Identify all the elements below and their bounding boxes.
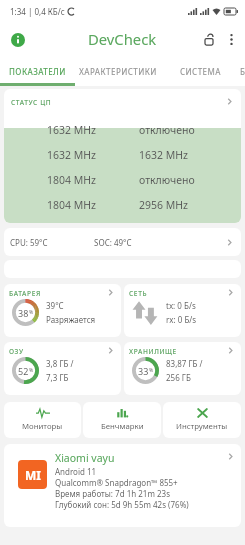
staticText: DevCheck <box>88 29 157 49</box>
button[interactable]: Мониторы <box>4 402 81 438</box>
staticText: 1632 MHz <box>47 123 96 137</box>
staticText: СТАТУС ЦП <box>11 98 52 107</box>
staticText: 2956 MHz <box>139 198 188 212</box>
staticText: SOC: 49°C <box>94 237 132 248</box>
staticText: CPU: 59°C <box>10 237 48 248</box>
staticText: 1:34 | 0,4 КБ/с <box>10 6 65 17</box>
button[interactable]: Info <box>6 28 29 51</box>
staticText: отключено <box>139 123 195 137</box>
button[interactable]: ПОКАЗАТЕЛИ <box>0 56 75 86</box>
button[interactable]: Инструменты <box>163 402 241 438</box>
staticText: отключено <box>139 173 195 187</box>
staticText: Android 11 <box>55 466 97 477</box>
staticText: 1632 MHz <box>139 148 188 162</box>
staticText: MI <box>25 467 41 483</box>
staticText: % <box>149 367 154 374</box>
staticText: tx: 0 Б/s <box>166 300 196 311</box>
button[interactable]: More options <box>220 28 242 50</box>
staticText: ПОКАЗАТЕЛИ <box>9 66 66 77</box>
staticText: ХРАНИЛИЩЕ <box>129 347 177 356</box>
button[interactable]: Бенчмарки <box>83 402 161 438</box>
button[interactable]: MI <box>4 444 241 527</box>
staticText: Инструменты <box>176 421 228 432</box>
staticText: 1804 MHz <box>47 198 96 212</box>
staticText: 38 <box>18 307 29 319</box>
staticText: 52 <box>18 365 29 377</box>
staticText: % <box>29 367 34 374</box>
staticText: 256 ГБ <box>166 372 191 383</box>
button[interactable]: СТАТУС ЦП <box>4 89 241 223</box>
staticText: Разряжается <box>46 314 96 325</box>
staticText: ОЗУ <box>9 347 24 356</box>
staticText: 83,87 ГБ / <box>166 358 203 369</box>
button[interactable]: БА <box>240 56 245 86</box>
staticText: СЕТЬ <box>129 289 148 298</box>
button[interactable]: Lock <box>198 28 220 50</box>
staticText: Qualcomm® Snapdragon™ 855+ <box>55 477 178 488</box>
staticText: Xiaomi vayu <box>55 451 115 465</box>
staticText: Бенчмарки <box>101 421 144 432</box>
staticText: 1632 MHz <box>47 148 96 162</box>
staticText: Мониторы <box>22 421 63 432</box>
staticText: ХАРАКТЕРИСТИКИ <box>79 66 157 77</box>
button[interactable]: ХАРАКТЕРИСТИКИ <box>75 56 161 86</box>
staticText: Время работы: 7d 1h 21m 23s <box>55 488 170 499</box>
staticText: % <box>29 309 34 316</box>
staticText: СИСТЕМА <box>180 66 221 77</box>
staticText: 7,3 ГБ <box>46 372 69 383</box>
button[interactable]: CPU: 59°C <box>4 228 241 256</box>
staticText: 3,8 ГБ / <box>46 358 74 369</box>
staticText: 33 <box>138 365 149 377</box>
button[interactable]: ОЗУ <box>4 342 121 395</box>
staticText: БА <box>240 66 245 77</box>
button[interactable]: СИСТЕМА <box>161 56 240 86</box>
staticText: БАТАРЕЯ <box>9 289 41 298</box>
staticText: 39°C <box>46 300 64 311</box>
staticText: rx: 0 Б/s <box>166 314 197 325</box>
staticText: Глубокий сон: 5d 9h 55m 42s (76%) <box>55 499 189 510</box>
staticText: 1804 MHz <box>47 173 96 187</box>
button[interactable]: БАТАРЕЯ <box>4 284 121 337</box>
button[interactable]: ХРАНИЛИЩЕ <box>124 342 241 395</box>
button[interactable]: СЕТЬ <box>124 284 241 337</box>
